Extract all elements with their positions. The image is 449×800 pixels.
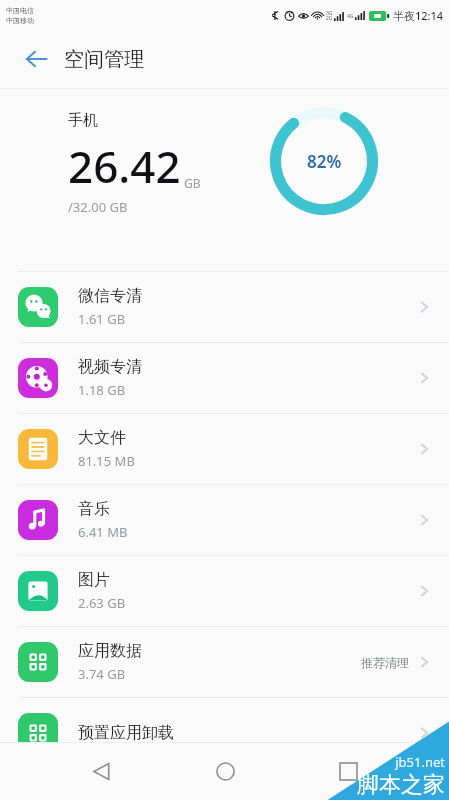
staticText: 82% — [307, 150, 342, 173]
button[interactable]: 最近任务 — [325, 748, 371, 794]
staticText: 图片 — [78, 570, 110, 590]
staticText: GB — [184, 175, 201, 191]
staticText: 预置应用卸载 — [78, 723, 174, 743]
staticText: 3.74 GB — [78, 665, 126, 683]
staticText: 脚本之家 — [357, 771, 445, 799]
button[interactable]: 大文件 — [0, 414, 449, 484]
staticText: 视频专清 — [78, 357, 142, 377]
staticText: 2.63 GB — [78, 594, 126, 612]
button[interactable]: 主屏幕 — [202, 748, 248, 794]
staticText: jb51.net — [395, 753, 445, 771]
staticText: 4G — [347, 13, 354, 20]
button[interactable]: 应用数据 — [0, 627, 449, 697]
button[interactable]: 预置应用卸载 — [0, 698, 449, 768]
staticText: 微信专清 — [78, 286, 142, 306]
staticText: 大文件 — [78, 428, 126, 448]
button[interactable]: 音乐 — [0, 485, 449, 555]
staticText: 1.61 GB — [78, 310, 126, 328]
staticText: 空间管理 — [64, 47, 144, 72]
button[interactable]: 视频专清 — [0, 343, 449, 413]
button[interactable]: 返回 — [78, 748, 124, 794]
button[interactable]: 返回 — [14, 37, 58, 81]
staticText: 推荐清理 — [361, 655, 409, 670]
button[interactable]: 微信专清 — [0, 272, 449, 342]
button[interactable]: 图片 — [0, 556, 449, 626]
staticText: 3G 2G — [326, 10, 333, 21]
staticText: 6.41 MB — [78, 523, 128, 541]
staticText: 音乐 — [78, 499, 110, 519]
staticText: 1.18 GB — [78, 381, 126, 399]
staticText: 应用数据 — [78, 641, 142, 661]
staticText: 26.42 — [68, 136, 181, 196]
staticText: 半夜12:14 — [393, 8, 444, 23]
staticText: 中国移动 — [6, 16, 34, 25]
staticText: 手机 — [68, 111, 98, 130]
staticText: 中国电信 — [6, 6, 34, 15]
staticText: 81.15 MB — [78, 452, 135, 470]
staticText: /32.00 GB — [68, 198, 128, 216]
